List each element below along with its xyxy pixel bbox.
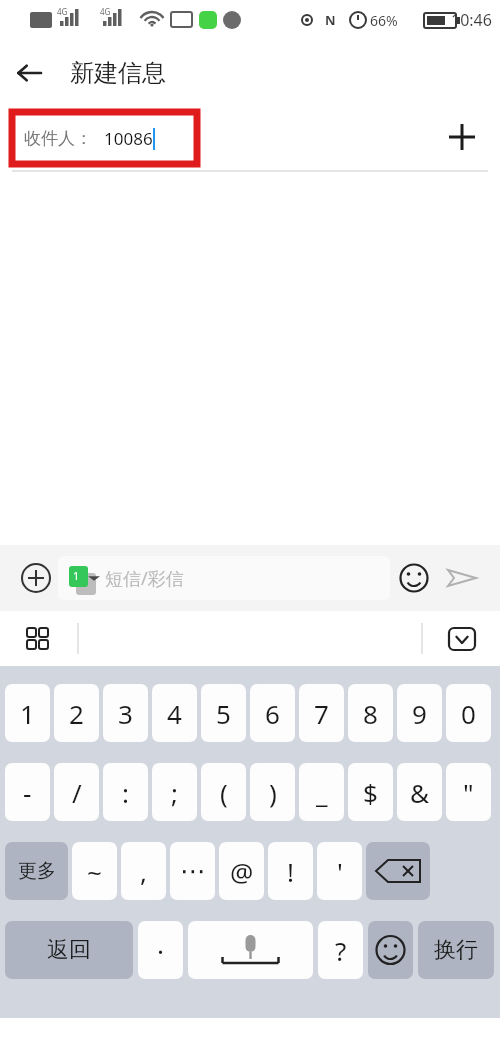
staticText: 5 [216,696,231,731]
button[interactable]: ⋯ [170,842,215,900]
button[interactable]: 更多 [5,842,68,900]
button[interactable]: 返回 [5,921,133,979]
button[interactable]: Emoji [390,554,438,602]
button[interactable]: : [103,763,148,821]
button[interactable]: 2 [54,684,99,742]
button[interactable]: ~ [72,842,117,900]
button[interactable]: Hide keyboard [444,621,480,657]
button[interactable]: 8 [348,684,393,742]
button[interactable]: 9 [397,684,442,742]
staticText: 返回 [47,936,91,964]
button[interactable]: / [54,763,99,821]
button[interactable]: 5 [201,684,246,742]
button[interactable]: , [121,842,166,900]
staticText: ) [269,775,277,810]
staticText: 10086 [104,127,153,150]
button[interactable]: Emoji [368,921,413,979]
staticText: 7 [314,696,329,731]
staticText: ⋯ [180,856,206,886]
button[interactable]: 1 [68,556,380,600]
staticText: 更多 [18,859,56,883]
staticText: & [410,775,430,810]
staticText: 新建信息 [70,58,166,88]
staticText: · [157,933,164,968]
staticText: ( [220,775,228,810]
button[interactable]: 0 [446,684,491,742]
staticText: 换行 [434,936,478,964]
staticText: ! [287,854,294,889]
staticText: 4G [100,6,111,17]
staticText: ' [337,854,343,889]
button[interactable]: 收件人： [24,127,155,150]
button[interactable]: " [446,763,491,821]
staticText: 3 [118,696,133,731]
button[interactable]: _ [299,763,344,821]
button[interactable]: ) [250,763,295,821]
button[interactable]: 1 [5,684,50,742]
staticText: _ [316,775,328,810]
staticText: 9 [412,696,427,731]
staticText: 短信/彩信 [105,566,184,591]
button[interactable]: - [5,763,50,821]
staticText: 2 [69,696,84,731]
button[interactable]: Send [438,554,486,602]
button[interactable]: ; [152,763,197,821]
button[interactable]: ( [201,763,246,821]
button[interactable]: ' [317,842,362,900]
staticText: ? [335,933,347,968]
staticText: ; [171,775,178,810]
staticText: - [23,775,32,810]
button[interactable]: · [138,921,183,979]
staticText: / [72,775,82,810]
button[interactable]: Keyboard layouts [20,621,56,657]
button[interactable]: $ [348,763,393,821]
button[interactable]: ? [318,921,363,979]
staticText: N [325,11,336,29]
button[interactable]: 6 [250,684,295,742]
staticText: 1 [20,696,35,731]
staticText: ~ [87,854,102,889]
button[interactable]: Add [14,556,58,600]
button[interactable]: 换行 [418,921,494,979]
staticText: 收件人： [24,128,92,149]
staticText: $ [363,775,378,810]
staticText: @ [230,854,254,889]
button[interactable]: Backspace [366,842,430,900]
staticText: 10:46 [451,9,492,31]
staticText: 4 [167,696,182,731]
button[interactable]: & [397,763,442,821]
button[interactable]: 4 [152,684,197,742]
button[interactable]: 3 [103,684,148,742]
button[interactable]: Back [0,45,56,101]
staticText: 4G [57,6,68,17]
staticText: : [122,775,129,810]
staticText: 66% [370,11,398,30]
staticText: 0 [461,696,476,731]
staticText: 6 [265,696,280,731]
staticText: " [463,775,474,810]
button[interactable]: @ [219,842,264,900]
staticText: 1 [73,568,80,583]
button[interactable]: 7 [299,684,344,742]
staticText: , [140,854,147,889]
staticText: 8 [363,696,378,731]
button[interactable]: ! [268,842,313,900]
button[interactable]: Space [188,921,313,979]
